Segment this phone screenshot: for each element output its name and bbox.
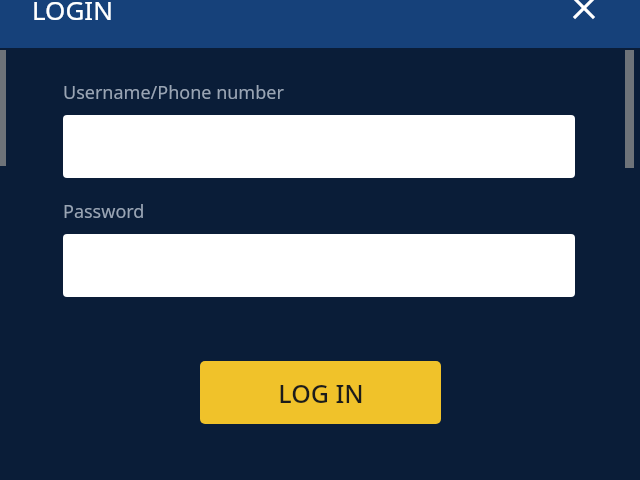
button[interactable]: Close (560, 0, 608, 32)
staticText: LOG IN (278, 376, 364, 410)
button[interactable]: LOG IN (200, 361, 441, 424)
staticText: LOGIN (32, 0, 113, 27)
staticText: Username/Phone number (63, 80, 284, 105)
staticText: Password (63, 199, 145, 224)
button[interactable] (63, 234, 575, 297)
button[interactable] (63, 115, 575, 178)
